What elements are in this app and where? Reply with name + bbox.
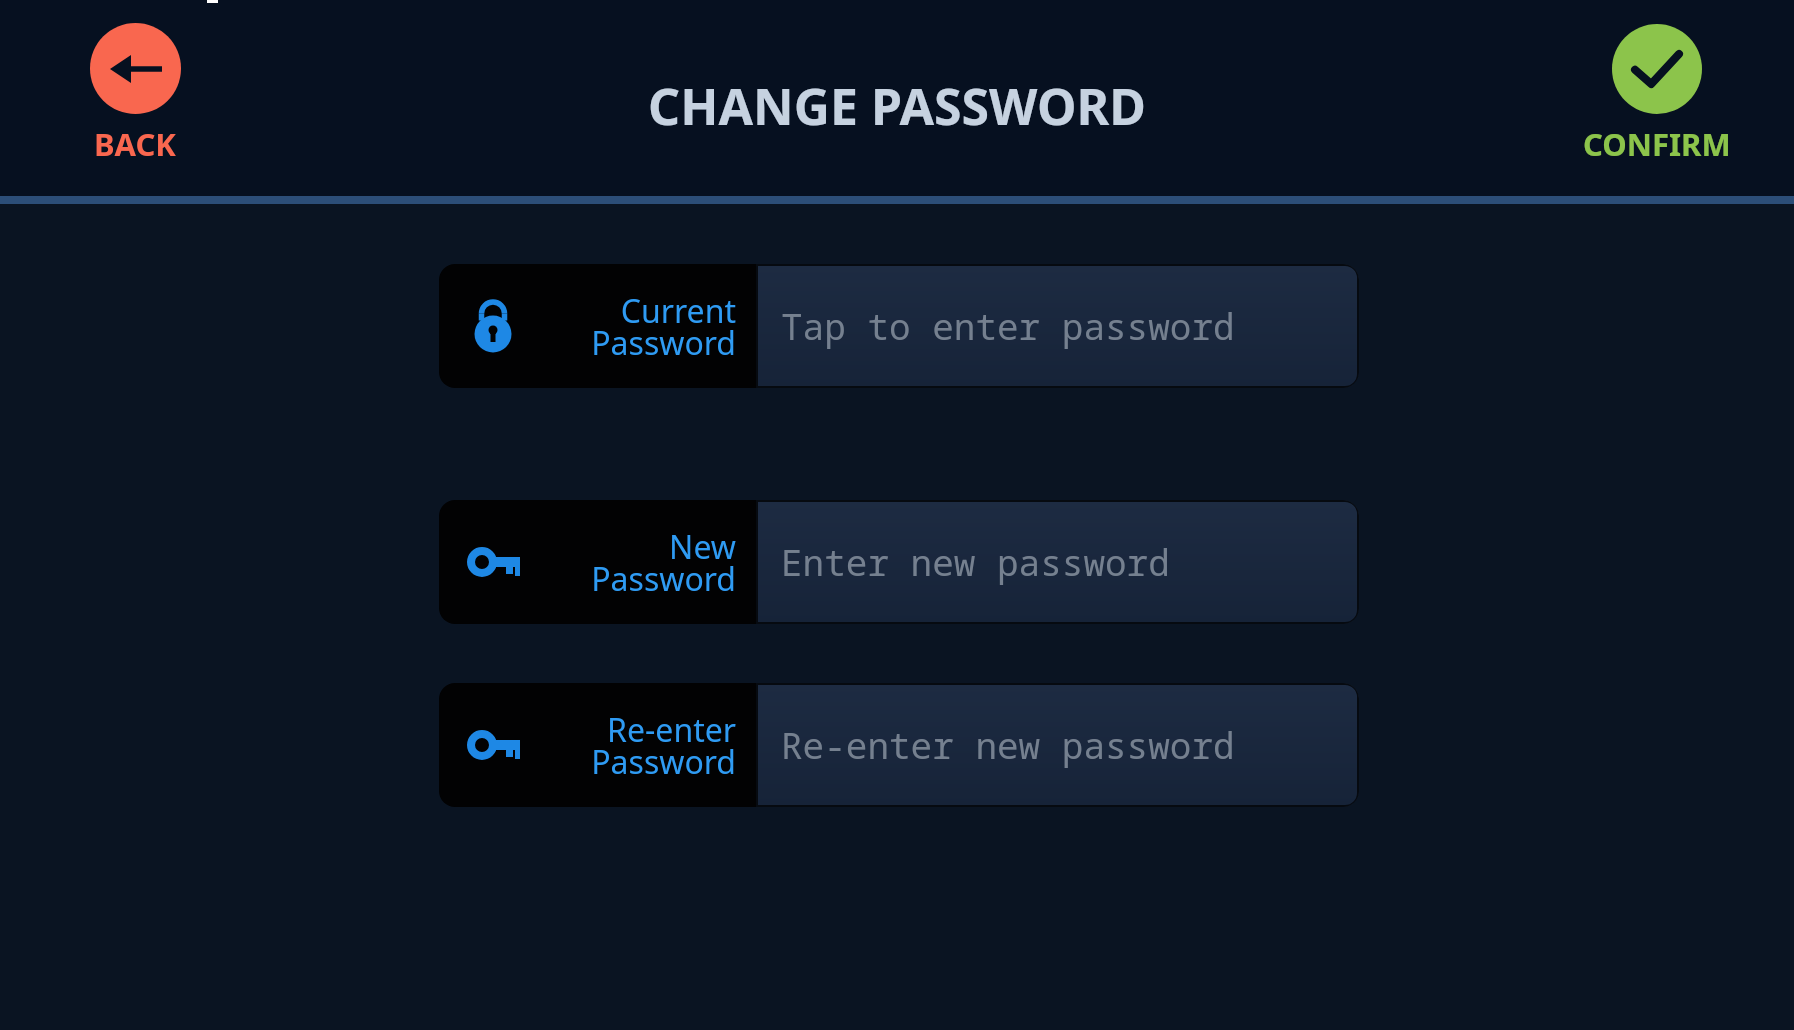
staticText: Re-enter Password (591, 708, 736, 783)
staticText: CHANGE PASSWORD (648, 72, 1146, 140)
staticText: Enter new password (781, 538, 1170, 587)
staticText: Tap to enter password (781, 302, 1235, 351)
staticText: Current Password (591, 289, 736, 364)
button[interactable]: Tap to enter password (756, 264, 1359, 388)
staticText: BACK (94, 123, 176, 165)
button[interactable]: Enter new password (756, 500, 1359, 624)
button[interactable]: CONFIRM (1572, 24, 1742, 165)
staticText: Re-enter new password (781, 721, 1235, 770)
button[interactable]: Re-enter new password (756, 683, 1359, 807)
button[interactable]: BACK (75, 23, 195, 165)
staticText: New Password (591, 525, 736, 600)
staticText: CONFIRM (1583, 123, 1731, 165)
